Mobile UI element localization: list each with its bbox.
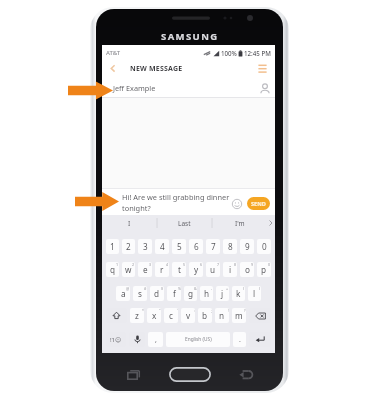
staticText: SAMSUNG <box>161 30 219 43</box>
button[interactable]: 8 <box>223 239 237 254</box>
button[interactable]: v <box>181 308 195 323</box>
button[interactable]: m <box>232 308 246 323</box>
button[interactable]: 6 <box>189 239 203 254</box>
button[interactable]: u <box>206 262 220 277</box>
staticText: e <box>143 264 148 275</box>
button[interactable]: , <box>148 332 163 347</box>
button[interactable]: d <box>150 286 164 301</box>
staticText: , <box>155 335 157 345</box>
button[interactable]: z <box>130 308 144 323</box>
button[interactable]: 0 <box>257 239 271 254</box>
button[interactable]: l <box>248 286 261 301</box>
button[interactable]: Home <box>169 367 211 382</box>
button[interactable]: k <box>232 286 245 301</box>
button[interactable]: 3 <box>138 239 152 254</box>
staticText: + <box>226 286 229 291</box>
button[interactable]: 2 <box>122 239 135 254</box>
button[interactable]: s <box>133 286 147 301</box>
staticText: English (US) <box>185 336 212 343</box>
button[interactable]: English (US) <box>166 332 230 347</box>
button[interactable]: I <box>102 215 157 231</box>
staticText: 4 <box>160 241 165 252</box>
staticText: z <box>135 310 139 321</box>
staticText: 4 <box>166 262 169 267</box>
staticText: b <box>202 310 208 321</box>
button[interactable]: p <box>257 262 271 277</box>
staticText: 9 <box>245 241 250 252</box>
staticText: d <box>154 288 160 299</box>
staticText: @ <box>126 286 130 291</box>
button[interactable]: Shift <box>106 308 127 323</box>
staticText: j <box>221 288 224 299</box>
staticText: 6 <box>200 262 203 267</box>
button[interactable]: 9 <box>240 239 254 254</box>
button[interactable]: 7 <box>206 239 220 254</box>
button[interactable]: c <box>164 308 178 323</box>
staticText: o <box>245 264 250 275</box>
button[interactable]: 4 <box>155 239 169 254</box>
button[interactable]: j <box>216 286 229 301</box>
button[interactable]: Voice input <box>129 332 145 347</box>
staticText: ' <box>177 308 178 313</box>
staticText: h <box>204 288 210 299</box>
staticText: l <box>253 288 256 299</box>
staticText: 5 <box>183 262 186 267</box>
button[interactable]: o <box>240 262 254 277</box>
button[interactable]: Menu <box>253 58 272 79</box>
button[interactable]: b <box>198 308 212 323</box>
button[interactable]: a <box>116 286 130 301</box>
button[interactable]: I'm <box>212 215 267 231</box>
staticText: p <box>261 264 267 275</box>
staticText: v <box>186 310 191 321</box>
button[interactable]: i <box>223 262 237 277</box>
button[interactable]: . <box>233 332 246 347</box>
button[interactable]: r <box>155 262 169 277</box>
staticText: ! <box>228 308 229 313</box>
staticText: y <box>194 264 199 275</box>
button[interactable]: h <box>200 286 213 301</box>
button[interactable]: !1☺ <box>106 332 126 347</box>
staticText: ( <box>243 286 245 291</box>
button[interactable]: g <box>184 286 197 301</box>
staticText: !1☺ <box>110 336 122 344</box>
staticText: c <box>169 310 173 321</box>
button[interactable]: w <box>122 262 135 277</box>
button[interactable]: Jeff Example <box>102 79 275 97</box>
button[interactable]: Recent apps <box>123 367 144 382</box>
staticText: Last <box>178 219 191 228</box>
staticText: 0 <box>262 241 267 252</box>
staticText: g <box>188 288 194 299</box>
button[interactable]: y <box>189 262 203 277</box>
button[interactable]: Add contact <box>255 79 275 97</box>
staticText: s <box>138 288 142 299</box>
staticText: 100% <box>221 49 237 57</box>
button[interactable]: t <box>172 262 186 277</box>
button[interactable]: Emoji <box>231 198 243 210</box>
staticText: k <box>236 288 241 299</box>
button[interactable]: e <box>138 262 152 277</box>
staticText: I'm <box>235 219 245 228</box>
staticText: a <box>121 288 126 299</box>
button[interactable]: Back <box>102 58 124 79</box>
button[interactable]: 5 <box>172 239 186 254</box>
button[interactable]: x <box>147 308 161 323</box>
button[interactable]: q <box>106 262 119 277</box>
staticText: 7 <box>211 241 216 252</box>
staticText: . <box>239 335 241 345</box>
button[interactable]: SEND <box>247 197 270 210</box>
button[interactable]: Enter <box>249 332 271 347</box>
staticText: SEND <box>251 200 266 208</box>
button[interactable]: f <box>167 286 181 301</box>
staticText: 3 <box>143 241 148 252</box>
staticText: 3 <box>149 262 152 267</box>
staticText: w <box>125 264 132 275</box>
button[interactable]: 1 <box>106 239 119 254</box>
button[interactable]: Backspace <box>249 308 271 323</box>
staticText: tonight? <box>122 203 151 213</box>
button[interactable]: Last <box>157 215 212 231</box>
staticText: NEW MESSAGE <box>130 64 183 74</box>
button[interactable]: Back <box>236 367 257 382</box>
staticText: f <box>173 288 176 299</box>
staticText: 1 <box>116 262 119 267</box>
button[interactable]: n <box>215 308 229 323</box>
